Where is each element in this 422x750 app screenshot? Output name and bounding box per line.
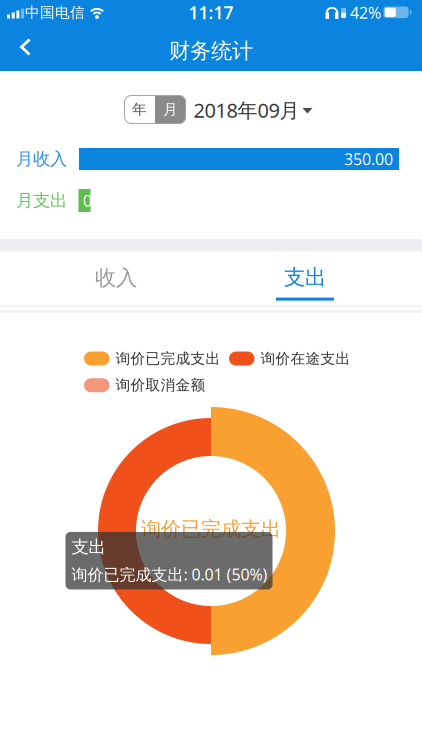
staticText: 支出 <box>284 264 326 291</box>
button[interactable]: 年 <box>124 95 155 124</box>
staticText: 11:17 <box>188 1 233 24</box>
staticText: 月收入 <box>16 148 67 170</box>
staticText: 支出 <box>71 536 105 558</box>
button[interactable]: Back <box>17 37 34 56</box>
button[interactable]: 询价在途支出 <box>229 349 350 367</box>
staticText: 年 <box>132 100 147 118</box>
staticText: 询价已完成支出 <box>115 349 220 367</box>
staticText: 询价取消金额 <box>115 376 205 394</box>
staticText: 收入 <box>95 265 137 291</box>
button[interactable]: 月 <box>155 95 186 124</box>
staticText: 月支出 <box>16 190 67 211</box>
staticText: 42% <box>350 2 381 23</box>
staticText: 询价在途支出 <box>260 349 350 367</box>
button[interactable]: 询价取消金额 <box>84 376 205 394</box>
button[interactable]: 2018年09月 <box>193 97 312 123</box>
staticText: 财务统计 <box>169 38 253 64</box>
button[interactable]: 收入 <box>36 251 196 305</box>
staticText: 月 <box>163 100 178 118</box>
staticText: 中国电信 <box>25 3 85 21</box>
button[interactable]: 支出 <box>225 255 385 309</box>
staticText: 350.00 <box>344 148 393 170</box>
staticText: 0 <box>83 190 92 211</box>
staticText: 2018年09月 <box>193 97 299 123</box>
staticText: 询价已完成支出 <box>141 517 281 541</box>
button[interactable]: 询价已完成支出 <box>84 349 220 367</box>
staticText: 询价已完成支出: 0.01 (50%) <box>71 564 267 585</box>
